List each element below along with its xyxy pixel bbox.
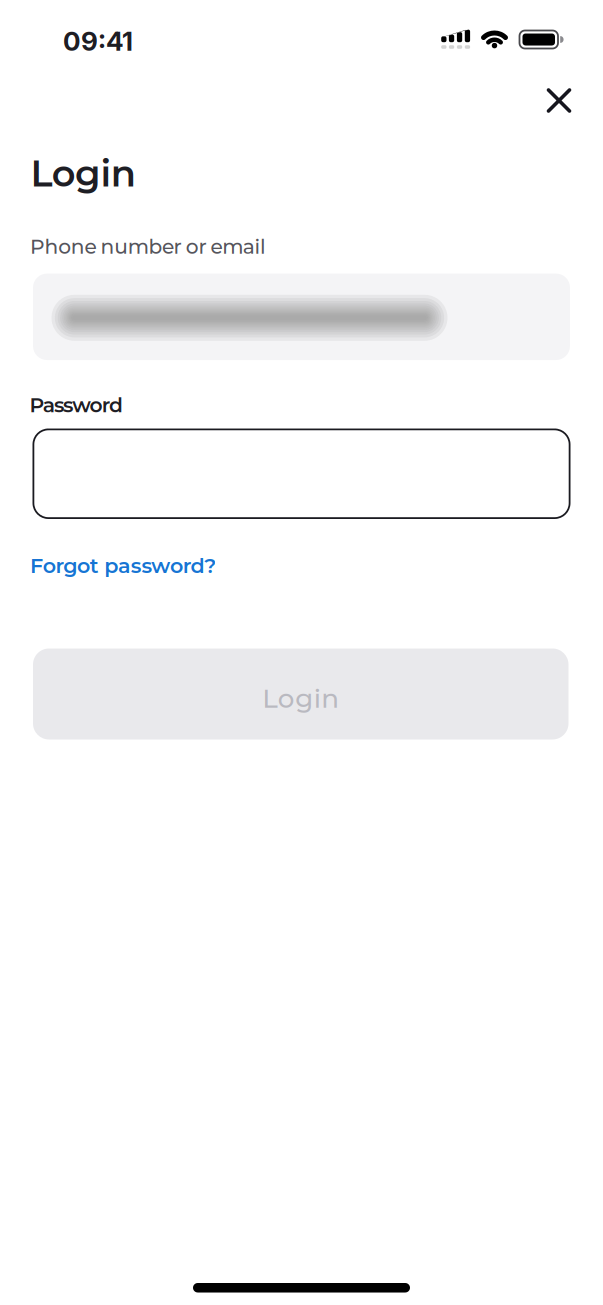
staticText: 09:41 [63, 25, 133, 57]
staticText: Forgot password? [30, 553, 216, 578]
button[interactable]: Close [537, 78, 581, 122]
button[interactable]: Phone number or email [33, 274, 570, 360]
button[interactable]: Login [33, 648, 568, 739]
staticText: Login [262, 683, 339, 714]
staticText: Phone number or email [30, 234, 266, 259]
button[interactable]: Password [32, 428, 570, 519]
staticText: Password [29, 392, 123, 417]
staticText: Login [30, 151, 136, 196]
button[interactable]: Forgot password? [30, 553, 567, 578]
